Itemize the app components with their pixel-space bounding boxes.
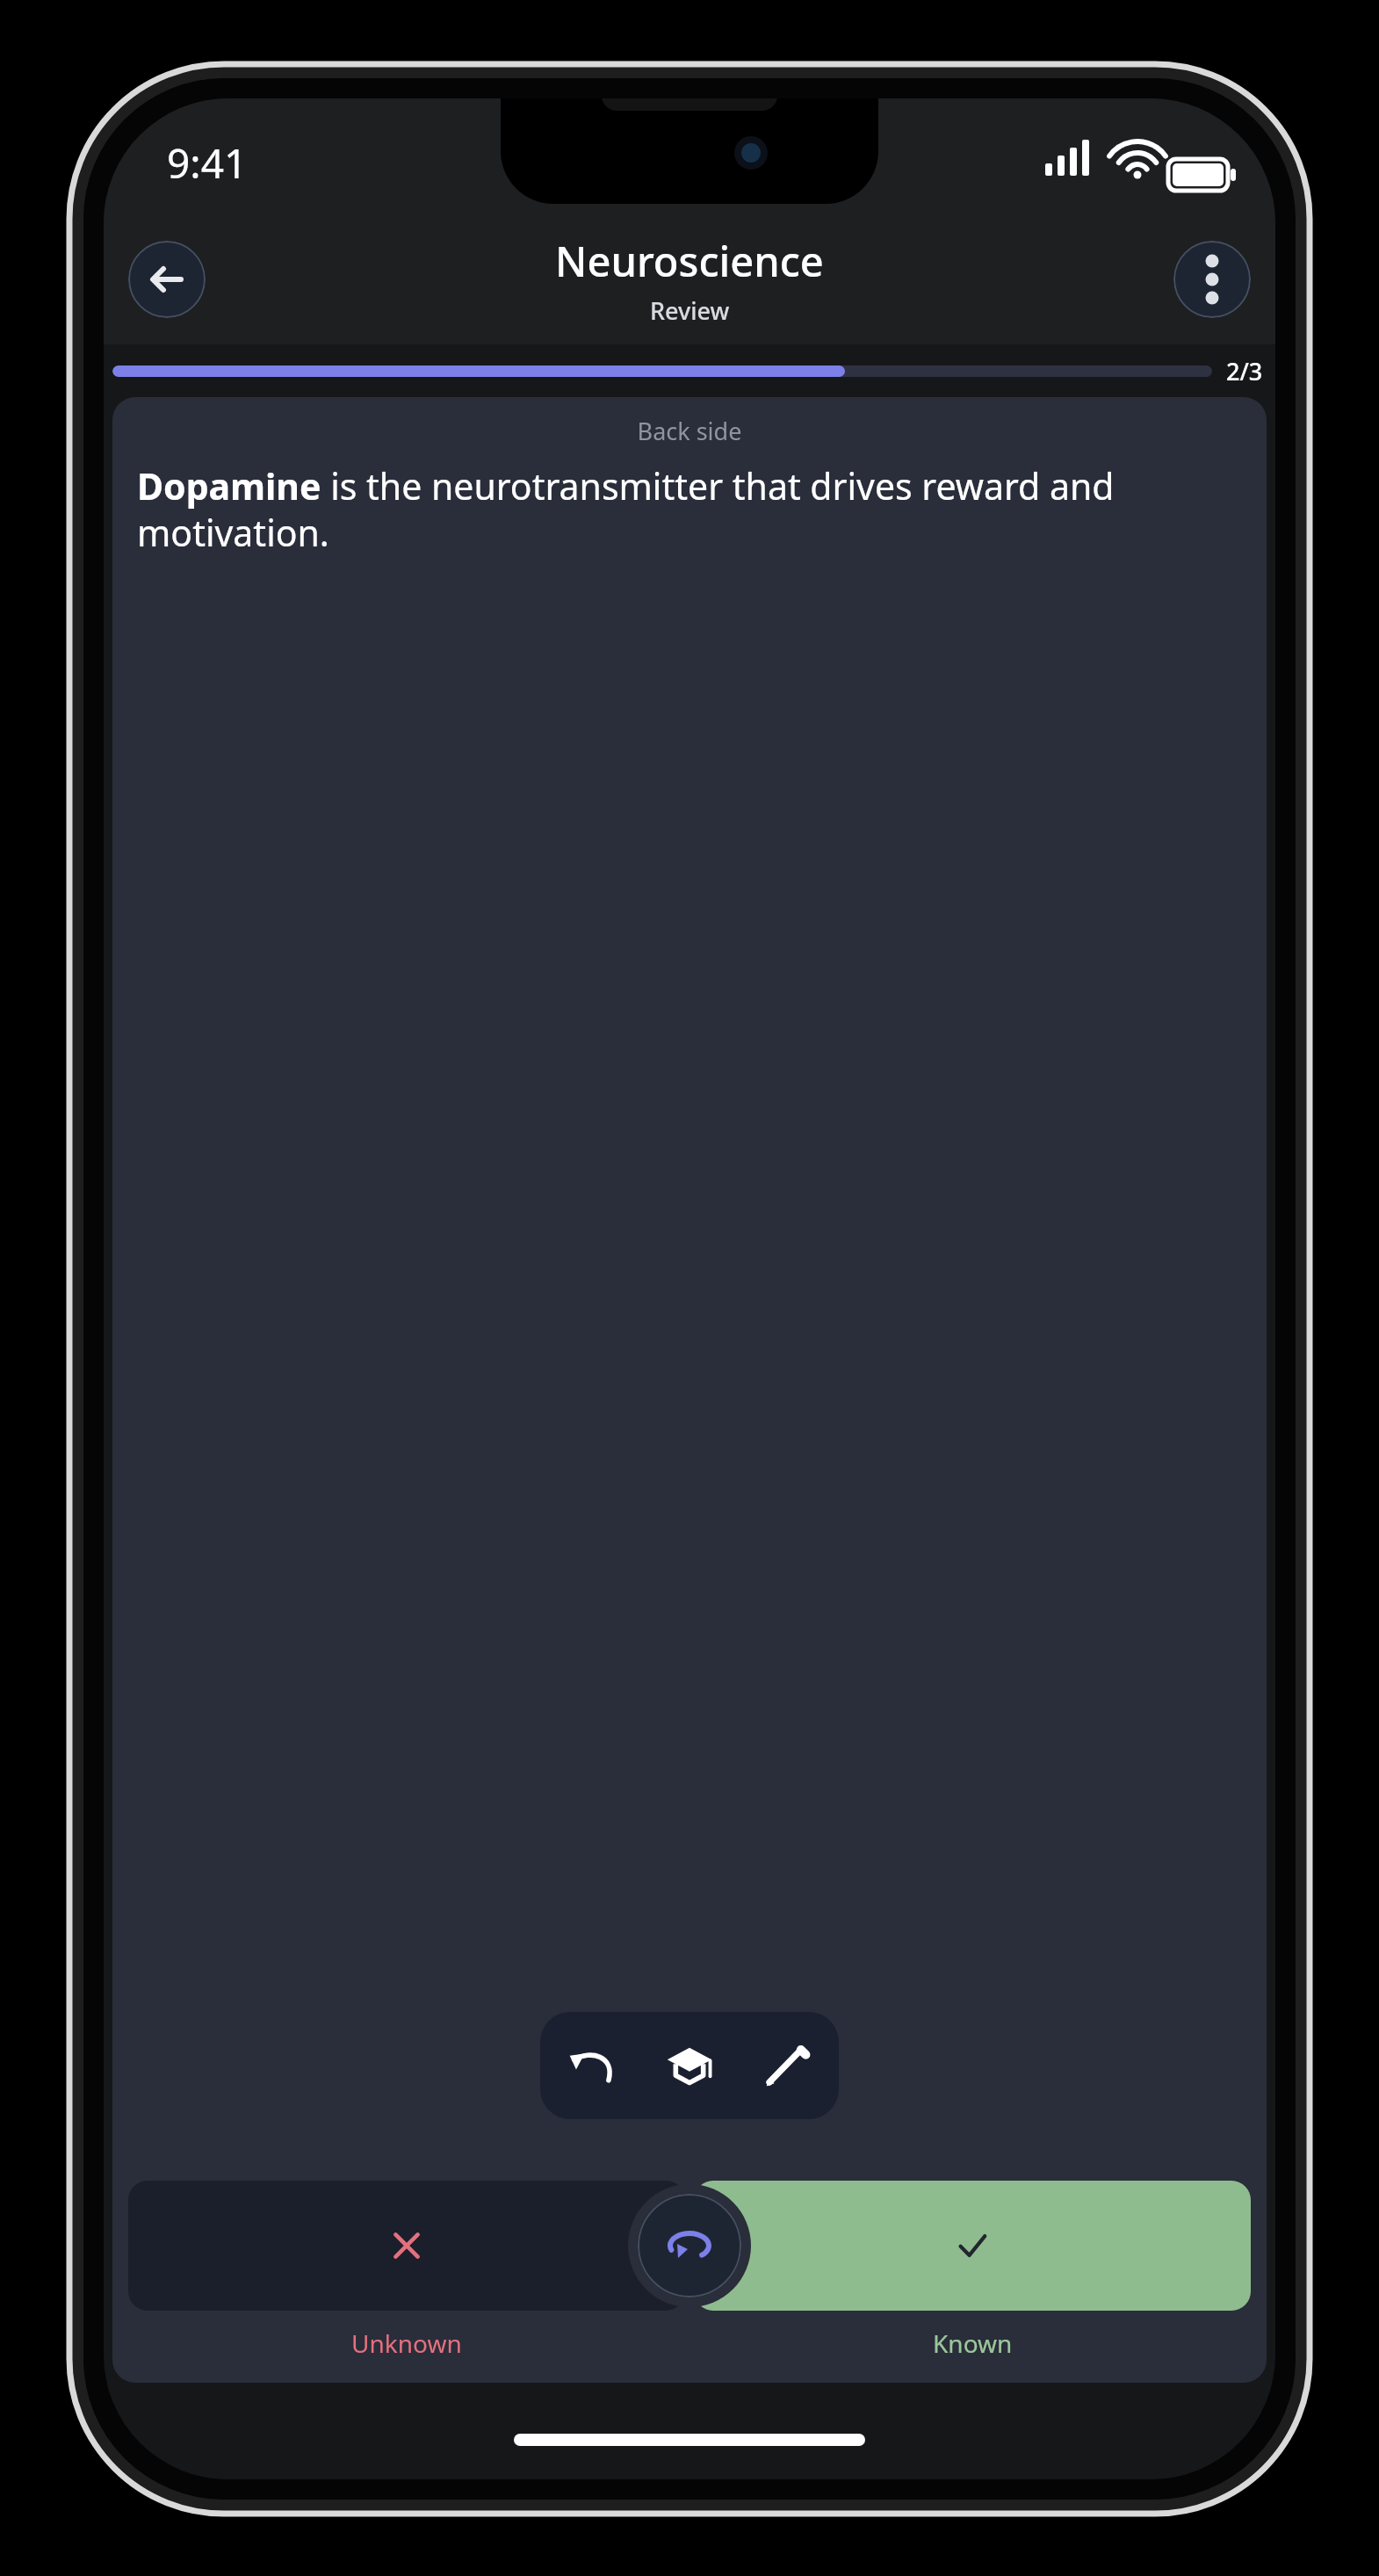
button[interactable]: Undo — [549, 2022, 637, 2109]
button[interactable]: Study — [646, 2022, 733, 2109]
staticText: 2/3 — [1226, 355, 1263, 387]
button[interactable]: More options — [1173, 241, 1251, 318]
staticText: 9:41 — [167, 135, 248, 191]
button[interactable]: Edit — [742, 2022, 830, 2109]
staticText: Back side — [112, 415, 1267, 447]
staticText: Known — [933, 2326, 1013, 2356]
button[interactable]: Flip card — [638, 2194, 741, 2297]
staticText: Review — [650, 294, 730, 327]
button[interactable]: Back — [128, 241, 206, 318]
staticText: Neuroscience — [555, 233, 824, 289]
button[interactable] — [694, 2181, 1251, 2311]
staticText: Dopamine is the neurotransmitter that dr… — [137, 461, 1242, 557]
staticText: Unknown — [351, 2326, 462, 2356]
button[interactable] — [128, 2181, 685, 2311]
